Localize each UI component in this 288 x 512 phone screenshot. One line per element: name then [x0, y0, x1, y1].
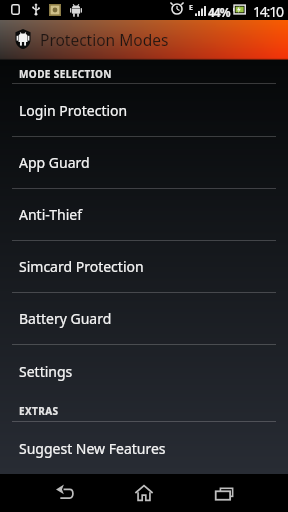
- button[interactable]: Recent apps: [195, 474, 252, 512]
- staticText: Suggest New Features: [19, 439, 166, 458]
- button[interactable]: Settings: [0, 345, 288, 397]
- staticText: MODE SELECTION: [19, 67, 112, 81]
- button[interactable]: Battery Guard: [0, 293, 288, 345]
- button[interactable]: App Guard: [0, 137, 288, 189]
- staticText: Simcard Protection: [19, 257, 144, 276]
- staticText: App Guard: [19, 153, 90, 172]
- staticText: Battery Guard: [19, 309, 112, 328]
- button[interactable]: Back: [36, 474, 93, 512]
- button[interactable]: Login Protection: [0, 84, 288, 137]
- staticText: 14:10: [253, 2, 283, 21]
- staticText: E: [189, 3, 193, 13]
- button[interactable]: Anti-Thief: [0, 189, 288, 241]
- staticText: Anti-Thief: [19, 205, 82, 224]
- staticText: 44%: [208, 4, 230, 20]
- staticText: EXTRAS: [19, 404, 59, 418]
- staticText: Login Protection: [19, 101, 128, 120]
- staticText: Protection Modes: [40, 29, 169, 50]
- button[interactable]: Home: [115, 474, 172, 512]
- button[interactable]: Simcard Protection: [0, 241, 288, 293]
- button[interactable]: Suggest New Features: [0, 422, 288, 474]
- staticText: Settings: [19, 362, 73, 381]
